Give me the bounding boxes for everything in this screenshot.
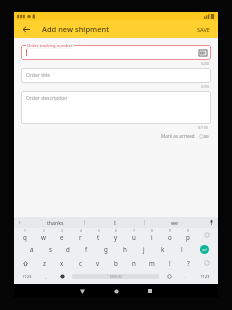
button[interactable]: Scan barcode	[21, 45, 211, 60]
staticText: x	[60, 259, 64, 267]
button[interactable]: m	[143, 256, 161, 270]
button[interactable]: c	[71, 256, 89, 270]
button[interactable]: Language	[54, 270, 70, 283]
button[interactable]: d	[59, 242, 77, 256]
staticText: a	[30, 245, 34, 253]
button[interactable]: Mark as arrived	[159, 132, 211, 140]
button[interactable]: Back	[19, 22, 33, 36]
button[interactable]: Backspace	[197, 228, 217, 242]
staticText: 8	[151, 229, 153, 233]
button[interactable]: 7	[125, 228, 143, 242]
staticText: m	[149, 259, 155, 267]
staticText: e	[60, 233, 64, 241]
staticText: 0/30	[201, 84, 209, 89]
staticText: ?	[187, 259, 190, 267]
staticText: !	[169, 259, 171, 267]
staticText: we	[171, 219, 179, 226]
button[interactable]: Back	[72, 284, 92, 298]
staticText: Add new shipment	[42, 24, 110, 34]
button[interactable]: l	[172, 242, 191, 256]
staticText: 5	[98, 229, 100, 233]
staticText: d	[66, 245, 70, 253]
button[interactable]: Emoji	[197, 256, 217, 270]
staticText: l	[181, 245, 183, 253]
button[interactable]: ?123	[193, 270, 217, 283]
staticText: 0/40	[201, 61, 209, 66]
button[interactable]: we	[145, 217, 204, 228]
button[interactable]: SAVE	[194, 24, 213, 35]
button[interactable]: !	[161, 256, 179, 270]
staticText: Order description	[26, 95, 68, 102]
button[interactable]: Shift	[15, 256, 35, 270]
button[interactable]: x	[53, 256, 71, 270]
button[interactable]: a	[23, 242, 41, 256]
staticText: z	[43, 259, 46, 267]
button[interactable]: thanks	[26, 217, 84, 228]
staticText: 2	[43, 229, 45, 233]
staticText: Order tracking number	[27, 43, 73, 49]
staticText: g	[104, 245, 108, 253]
staticText: thanks	[47, 219, 64, 226]
button[interactable]: f	[77, 242, 96, 256]
staticText: ?123	[200, 274, 210, 280]
button[interactable]: Clipboard	[14, 217, 26, 228]
staticText: I	[114, 219, 116, 226]
staticText: ,	[45, 274, 47, 280]
button[interactable]: Order description	[21, 91, 211, 124]
staticText: u	[132, 233, 136, 241]
button[interactable]: 3	[53, 228, 71, 242]
staticText: 0	[187, 229, 189, 233]
staticText: y	[114, 233, 118, 241]
button[interactable]: z	[35, 256, 53, 270]
button[interactable]: v	[89, 256, 107, 270]
staticText: s	[49, 245, 52, 253]
staticText: o	[168, 233, 172, 241]
button[interactable]: 9	[161, 228, 179, 242]
button[interactable]: Settings	[161, 270, 177, 283]
staticText: Mark as arrived	[161, 133, 195, 139]
staticText: i	[151, 233, 153, 241]
button[interactable]: 2	[34, 228, 53, 242]
button[interactable]: Space	[72, 274, 159, 279]
button[interactable]: Order title	[21, 68, 211, 83]
button[interactable]: 4	[71, 228, 89, 242]
button[interactable]: 0	[179, 228, 197, 242]
button[interactable]: b	[107, 256, 125, 270]
staticText: .	[184, 274, 186, 280]
button[interactable]: n	[125, 256, 143, 270]
button[interactable]: Voice input	[204, 217, 218, 228]
staticText: Order title	[26, 72, 51, 79]
button[interactable]: j	[134, 242, 153, 256]
button[interactable]: 8	[143, 228, 161, 242]
staticText: r	[79, 233, 82, 241]
staticText: 7	[133, 229, 135, 233]
button[interactable]: 6	[107, 228, 125, 242]
button[interactable]: ?	[179, 256, 197, 270]
staticText: k	[161, 245, 165, 253]
staticText: q	[23, 233, 27, 241]
staticText: SAVE	[197, 26, 210, 33]
button[interactable]: k	[153, 242, 172, 256]
button[interactable]: s	[41, 242, 59, 256]
staticText: v	[96, 259, 100, 267]
button[interactable]: ?123	[15, 270, 38, 283]
button[interactable]: I	[85, 217, 144, 228]
button[interactable]: Enter	[191, 242, 217, 256]
staticText: 9	[169, 229, 171, 233]
button[interactable]: 1	[15, 228, 34, 242]
staticText: j	[143, 245, 145, 253]
button[interactable]: Recents	[140, 284, 160, 298]
button[interactable]: Scan barcode	[199, 49, 207, 57]
staticText: 1	[24, 229, 26, 233]
button[interactable]: g	[96, 242, 115, 256]
staticText: h	[123, 245, 127, 253]
button[interactable]: 5	[89, 228, 107, 242]
staticText: w	[41, 233, 46, 241]
staticText: 0/100	[198, 125, 209, 130]
staticText: 6	[115, 229, 117, 233]
button[interactable]: Home	[106, 284, 126, 298]
staticText: t	[97, 233, 100, 241]
button[interactable]: h	[115, 242, 134, 256]
